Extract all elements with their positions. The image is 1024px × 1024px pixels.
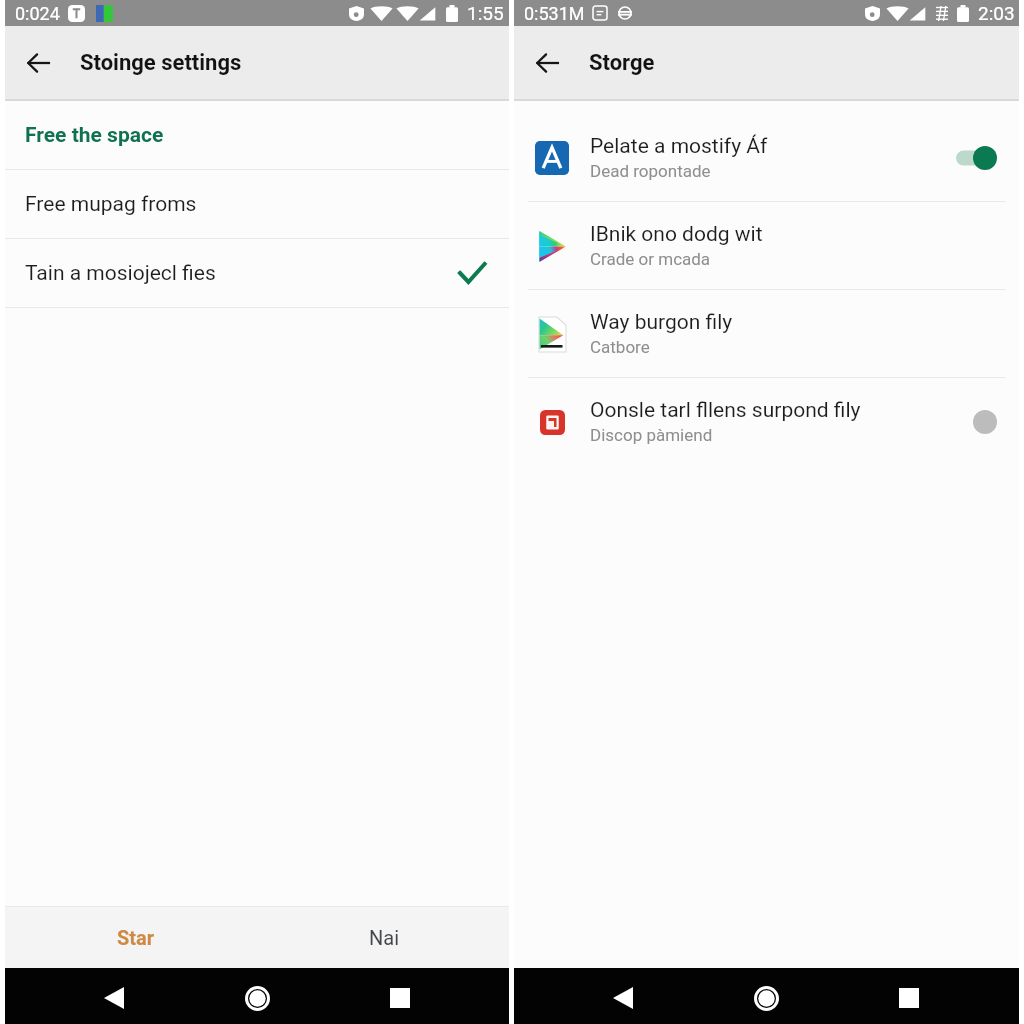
button[interactable]: Recents: [885, 974, 933, 1022]
button[interactable]: Home: [233, 974, 281, 1022]
staticText: Crade or mcada: [590, 249, 711, 269]
button[interactable]: Free the space: [5, 101, 509, 169]
button[interactable]: IBnik ono dodg wit: [514, 202, 1019, 289]
button[interactable]: Free mupag froms: [5, 170, 509, 238]
staticText: 1:55: [467, 2, 504, 24]
staticText: 0:531M: [524, 3, 585, 24]
staticText: Free mupag froms: [25, 192, 197, 217]
button[interactable]: Way burgon fily: [514, 290, 1019, 377]
staticText: Stoinge settings: [80, 50, 242, 76]
staticText: Nai: [369, 926, 400, 949]
staticText: IBnik ono dodg wit: [590, 222, 763, 247]
button[interactable]: Oonsle tarl fllens surpond fily: [514, 378, 1019, 465]
staticText: Oonsle tarl fllens surpond fily: [590, 398, 861, 423]
button[interactable]: Back: [17, 41, 61, 85]
button[interactable]: Recents: [376, 974, 424, 1022]
button[interactable]: Nai: [260, 907, 509, 968]
button[interactable]: Star: [12, 907, 260, 968]
button[interactable]: Back: [526, 41, 570, 85]
button[interactable]: Tain a mosiojecl fies: [5, 239, 509, 307]
button[interactable]: Back: [599, 974, 647, 1022]
staticText: 0:024: [15, 3, 60, 24]
button[interactable]: Home: [742, 974, 790, 1022]
staticText: Way burgon fily: [590, 310, 733, 335]
staticText: 2:03: [978, 2, 1015, 24]
button[interactable]: Back: [90, 974, 138, 1022]
staticText: Storge: [589, 50, 655, 76]
staticText: Dead ropontade: [590, 161, 711, 181]
staticText: Catbore: [590, 337, 650, 357]
staticText: Free the space: [25, 123, 164, 148]
staticText: Pelate a mostify Áf: [590, 134, 768, 159]
staticText: Tain a mosiojecl fies: [25, 261, 216, 286]
staticText: Star: [117, 926, 155, 949]
button[interactable]: Pelate a mostify Áf: [514, 114, 1019, 201]
staticText: Discop pàmiend: [590, 425, 713, 445]
